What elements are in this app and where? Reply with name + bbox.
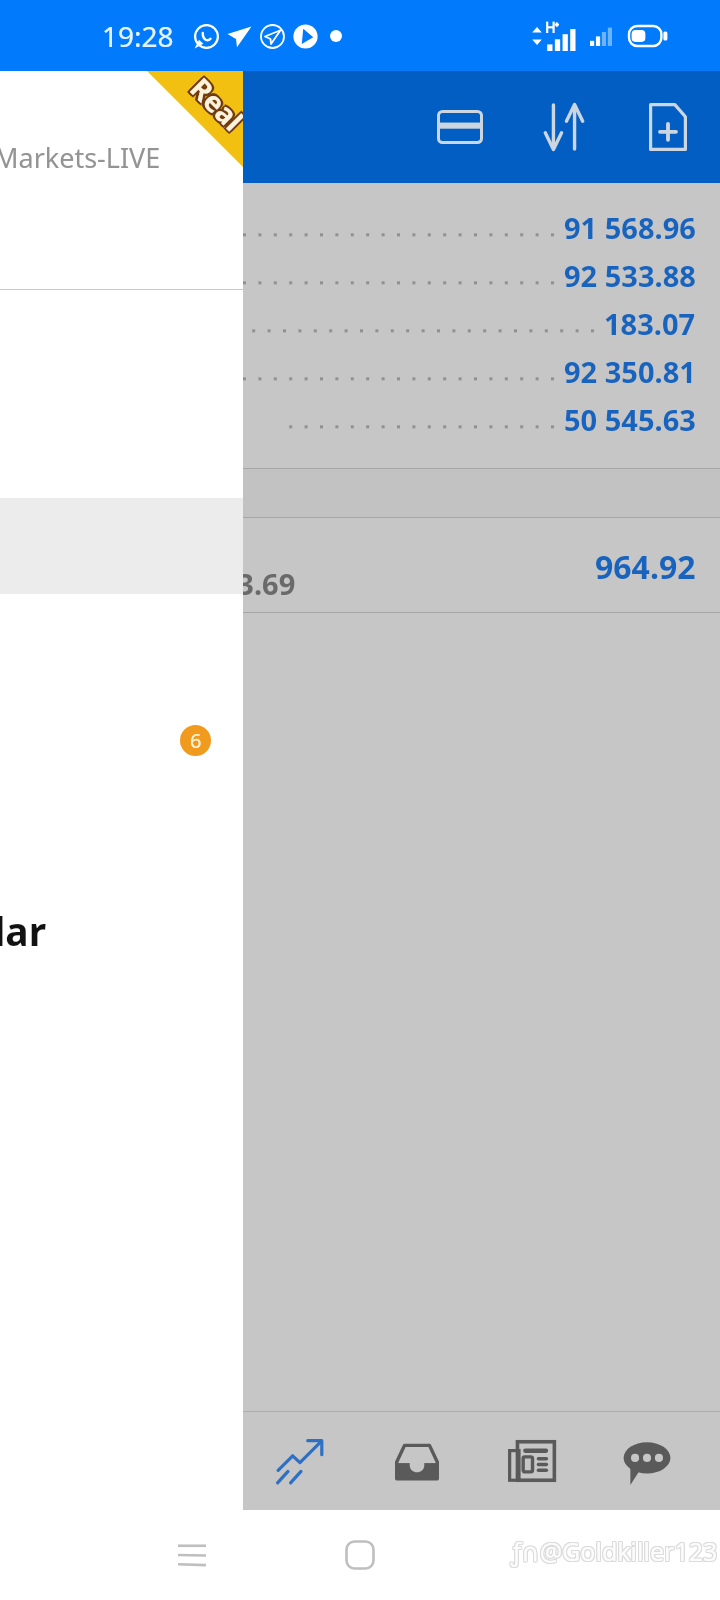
staticText: 19:28 (102, 17, 174, 55)
staticText: Real (184, 71, 243, 140)
button[interactable]: News (474, 1412, 589, 1510)
staticText: Real (182, 71, 243, 139)
button[interactable]: Transfer funds (512, 75, 616, 179)
button[interactable]: Balance: (0, 203, 720, 251)
button[interactable]: New order (616, 75, 720, 179)
button[interactable]: 964.92 (0, 518, 720, 612)
staticText: 91 568.96 (564, 208, 696, 247)
staticText: ƒ∩@Goldkiller123 (510, 1535, 717, 1569)
button[interactable]: 6 (0, 692, 243, 792)
button[interactable]: Home (324, 1519, 396, 1591)
staticText: 92 350.81 (564, 352, 696, 391)
staticText: ƒ∩@Goldkiller123 (512, 1535, 719, 1569)
staticText: 964.92 (595, 545, 696, 589)
button[interactable]: Recents (156, 1519, 228, 1591)
button[interactable]: Markets-LIVE (0, 71, 243, 289)
staticText: Equity: (20, 256, 110, 294)
staticText: Real (182, 71, 243, 136)
staticText: ƒ∩@Goldkiller123 (511, 1534, 718, 1568)
button[interactable]: Calendar (0, 882, 243, 982)
button[interactable]: Deposit (408, 75, 512, 179)
button[interactable]: Chat (589, 1412, 704, 1510)
button[interactable]: Quotes (243, 1412, 359, 1510)
staticText: Real (181, 71, 243, 138)
staticText: ƒ∩@Goldkiller123 (511, 1535, 718, 1569)
staticText: Real (185, 71, 243, 139)
staticText: 2 183.69 (180, 564, 296, 603)
staticText: Real (182, 72, 243, 142)
staticText: Real (181, 71, 243, 140)
button[interactable]: Level: (0, 395, 720, 443)
button[interactable]: Equity: (0, 251, 720, 299)
staticText: 183.07 (604, 304, 696, 343)
staticText: ƒ∩@Goldkiller123 (510, 1534, 717, 1568)
button[interactable]: Margin: (0, 299, 720, 347)
staticText: ƒ∩@Goldkiller123 (510, 1533, 717, 1567)
staticText: 92 533.88 (564, 256, 696, 295)
staticText: ƒ∩@Goldkiller123 (512, 1534, 719, 1568)
staticText: 50 545.63 (564, 400, 696, 439)
staticText: 6 (190, 727, 202, 754)
staticText: ƒ∩@Goldkiller123 (511, 1533, 718, 1567)
button[interactable]: Trade (359, 1412, 474, 1510)
button[interactable]: Free margin: (0, 347, 720, 395)
staticText: Calendar (0, 904, 47, 957)
staticText: ƒ∩@Goldkiller123 (512, 1533, 719, 1567)
staticText: Real (180, 71, 243, 139)
staticText: Markets-LIVE (0, 139, 161, 176)
staticText: Real (184, 71, 243, 138)
